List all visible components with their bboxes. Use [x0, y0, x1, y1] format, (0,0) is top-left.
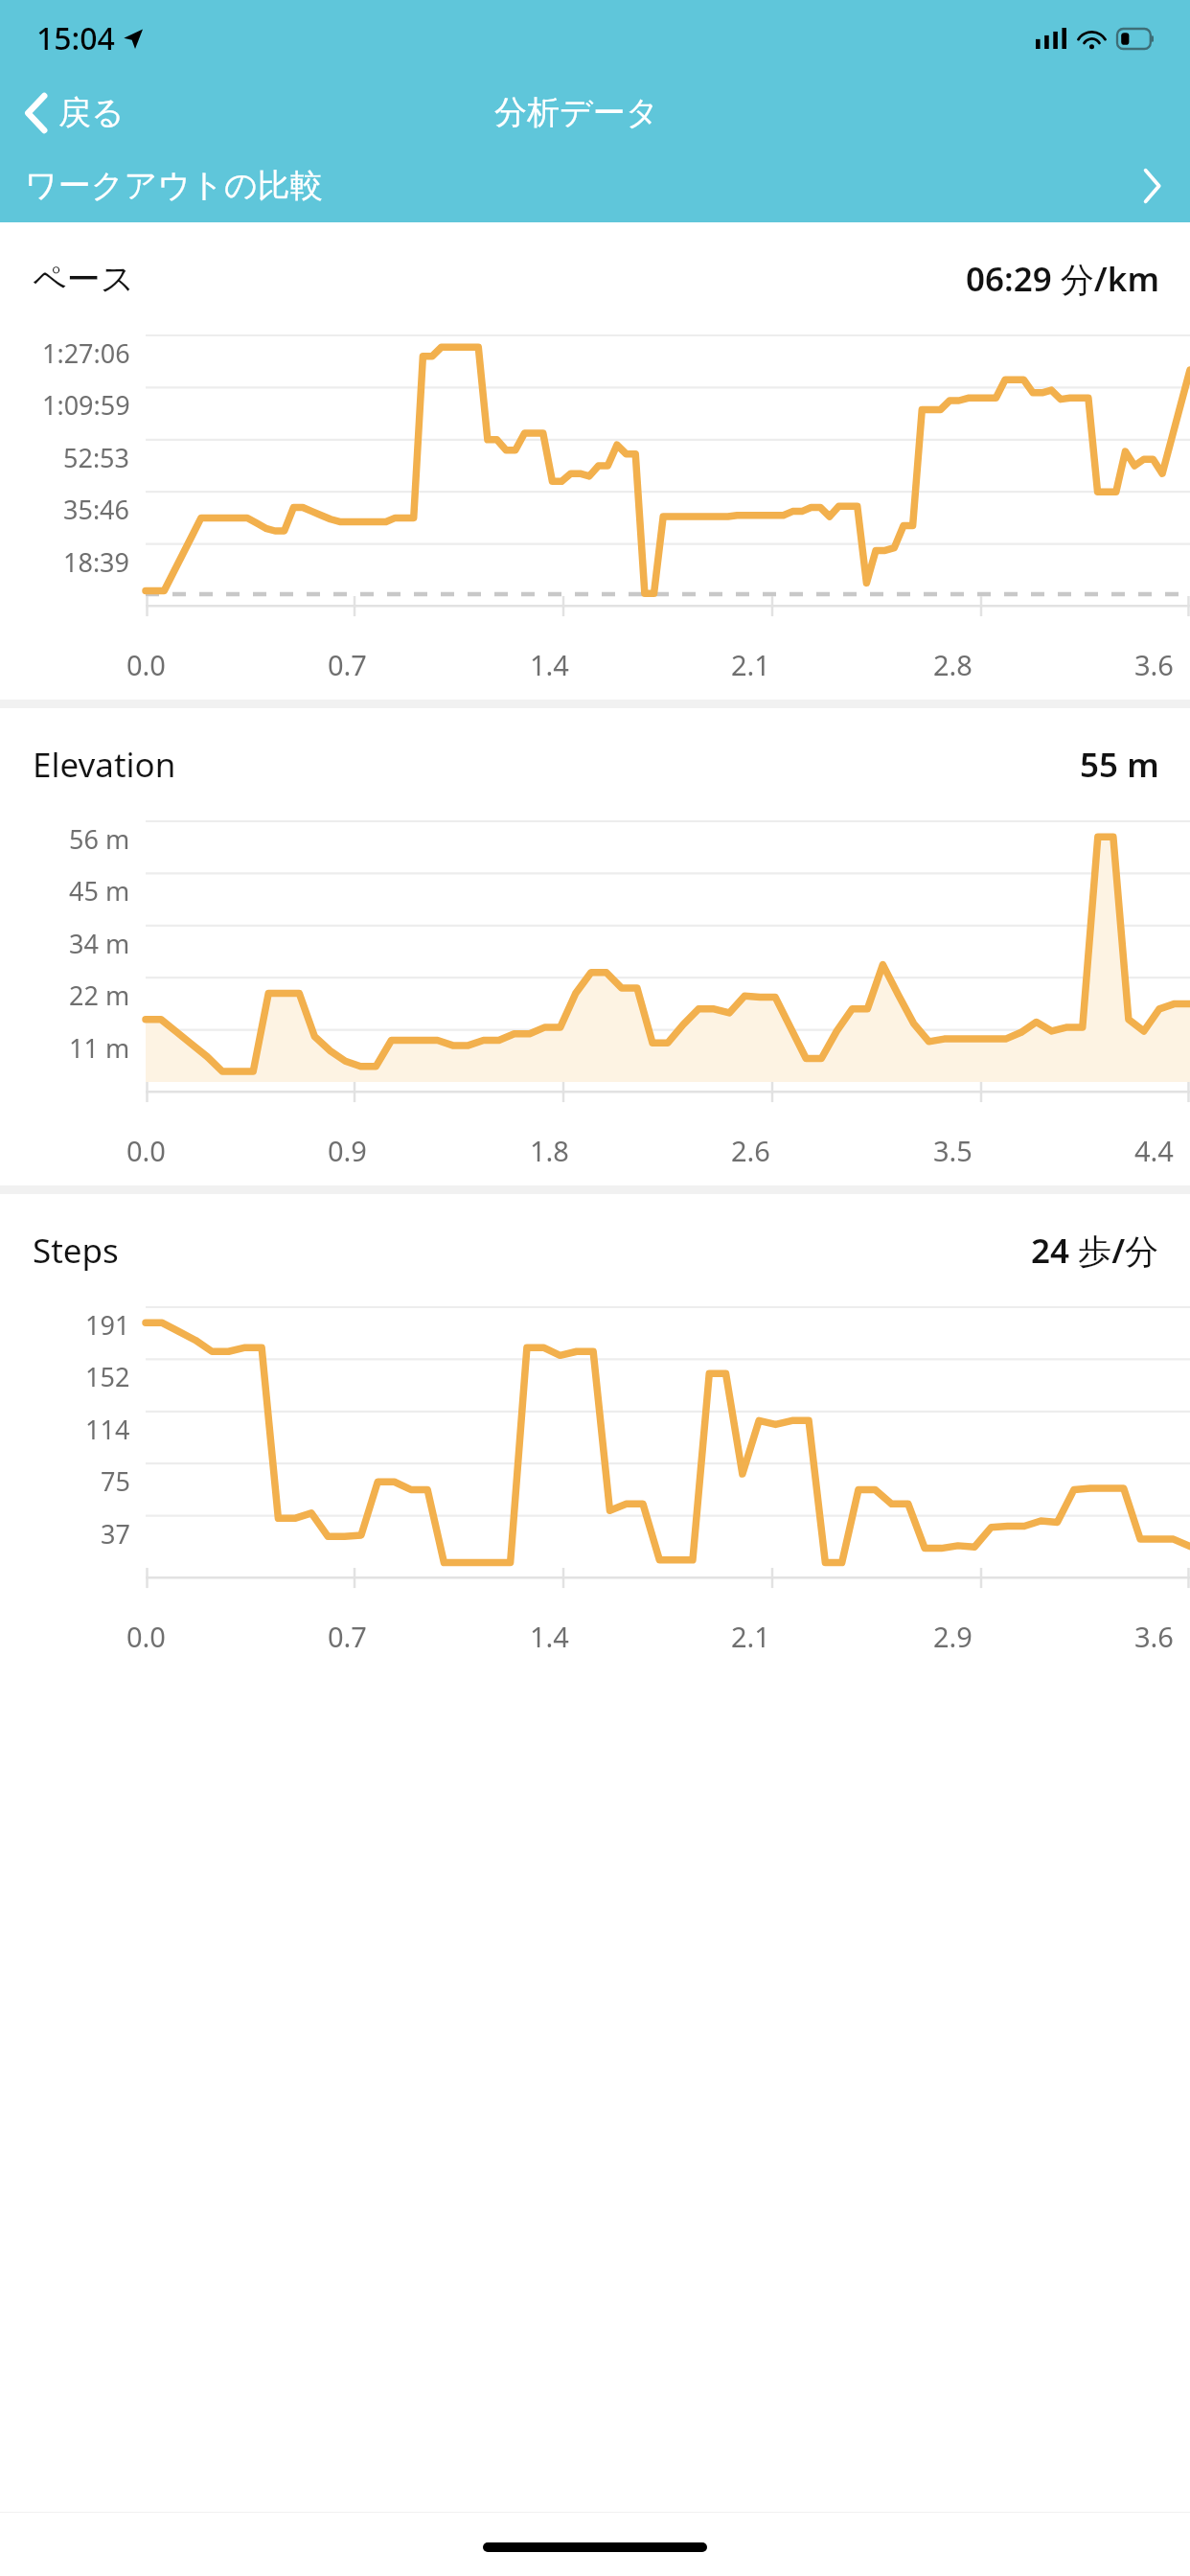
staticText: 35:46	[63, 492, 130, 527]
staticText: 2.9	[933, 1618, 973, 1655]
staticText: 45 m	[69, 873, 130, 908]
button[interactable]: ワークアウトの比較	[0, 149, 1190, 222]
staticText: 0.0	[126, 1132, 166, 1169]
staticText: ペース	[33, 258, 135, 300]
staticText: 2.6	[731, 1132, 770, 1169]
staticText: 11 m	[69, 1030, 130, 1066]
staticText: ワークアウトの比較	[25, 165, 323, 206]
button[interactable]: 戻る	[0, 84, 144, 141]
staticText: 191	[85, 1307, 130, 1343]
staticText: 2.1	[731, 646, 770, 683]
staticText: 0.7	[328, 646, 367, 683]
staticText: 1.8	[530, 1132, 569, 1169]
staticText: 55 m	[1080, 742, 1159, 788]
staticText: 0.7	[328, 1618, 367, 1655]
staticText: 0.0	[126, 1618, 166, 1655]
staticText: 1:09:59	[42, 387, 130, 423]
staticText: 2.8	[933, 646, 973, 683]
staticText: 1:27:06	[42, 335, 130, 371]
staticText: 1.4	[530, 646, 569, 683]
staticText: 3.5	[933, 1132, 973, 1169]
staticText: 0.9	[328, 1132, 367, 1169]
staticText: Steps	[33, 1228, 119, 1274]
staticText: 15:04	[36, 17, 115, 59]
staticText: 戻る	[58, 92, 125, 133]
staticText: Elevation	[33, 742, 176, 788]
staticText: 1.4	[530, 1618, 569, 1655]
staticText: 0.0	[126, 646, 166, 683]
staticText: 24 歩/分	[1031, 1228, 1159, 1274]
staticText: 22 m	[69, 977, 130, 1013]
staticText: 75	[101, 1463, 130, 1499]
other: Open workout comparison	[1143, 169, 1161, 203]
staticText: 4.4	[1134, 1132, 1174, 1169]
staticText: 3.6	[1134, 1618, 1174, 1655]
staticText: 分析データ	[494, 92, 659, 133]
button[interactable]: ペース	[0, 222, 1190, 700]
staticText: 2.1	[731, 1618, 770, 1655]
button[interactable]: Elevation	[0, 708, 1190, 1185]
staticText: 3.6	[1134, 646, 1174, 683]
button[interactable]: Steps	[0, 1194, 1190, 1671]
staticText: 52:53	[63, 440, 130, 475]
staticText: 152	[85, 1359, 130, 1394]
staticText: 56 m	[69, 821, 130, 857]
staticText: 37	[101, 1516, 130, 1552]
staticText: 18:39	[63, 544, 130, 580]
staticText: 114	[85, 1412, 130, 1447]
staticText: 06:29 分/km	[966, 256, 1159, 302]
staticText: 34 m	[69, 926, 130, 961]
